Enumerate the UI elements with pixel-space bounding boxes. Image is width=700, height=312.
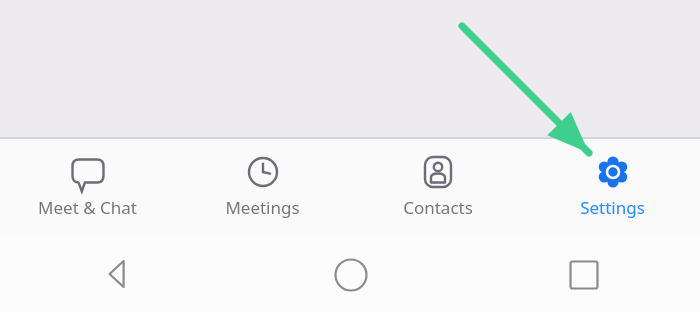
staticText: Settings (580, 196, 645, 219)
button[interactable]: Contacts (350, 139, 525, 237)
button[interactable]: Back (0, 237, 234, 312)
button[interactable]: Settings (525, 139, 700, 237)
staticText: Contacts (403, 196, 473, 219)
staticText: Meetings (225, 196, 300, 219)
staticText: Meet & Chat (38, 196, 137, 219)
button[interactable]: Recent apps (467, 237, 700, 312)
button[interactable]: Meetings (175, 139, 350, 237)
button[interactable]: Meet & Chat (0, 139, 175, 237)
button[interactable]: Home (234, 237, 467, 312)
